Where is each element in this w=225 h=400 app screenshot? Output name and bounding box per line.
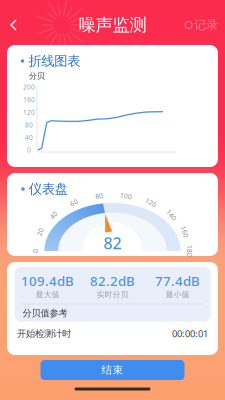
button[interactable]: 记录	[180, 13, 223, 37]
staticText: 0	[27, 146, 31, 154]
staticText: 180	[183, 247, 195, 255]
staticText: 实时分贝	[96, 290, 128, 299]
staticText: 160	[179, 227, 191, 236]
staticText: 82.2dB	[90, 272, 135, 290]
staticText: 分贝	[29, 71, 45, 81]
staticText: 分贝值参考	[22, 307, 67, 319]
staticText: 仪表盘	[29, 181, 68, 197]
staticText: 100	[120, 191, 132, 200]
staticText: 80	[95, 191, 103, 200]
staticText: 120	[23, 108, 35, 117]
staticText: 开始检测计时	[17, 328, 71, 339]
button[interactable]: Back	[2, 14, 25, 36]
staticText: 0	[33, 247, 37, 255]
staticText: 80	[25, 120, 33, 129]
staticText: 记录	[194, 18, 218, 32]
staticText: 40	[25, 133, 33, 142]
staticText: 82	[103, 232, 121, 254]
staticText: 120	[145, 198, 157, 207]
staticText: 140	[165, 211, 177, 219]
staticText: 结束	[101, 363, 123, 376]
staticText: 109.4dB	[21, 272, 74, 290]
staticText: 00:00:01	[172, 327, 208, 340]
button[interactable]: 结束	[40, 360, 184, 380]
staticText: 60	[70, 198, 78, 207]
staticText: 40	[49, 211, 57, 219]
staticText: 折线图表	[28, 53, 80, 69]
staticText: 200	[23, 83, 35, 91]
staticText: 77.4dB	[155, 272, 200, 290]
staticText: 最小值	[165, 290, 189, 299]
staticText: 160	[23, 95, 35, 104]
staticText: 20	[36, 227, 44, 236]
staticText: 噪声监测	[78, 14, 146, 36]
button[interactable]: 分贝值参考	[14, 304, 210, 321]
staticText: 最大值	[35, 290, 59, 299]
